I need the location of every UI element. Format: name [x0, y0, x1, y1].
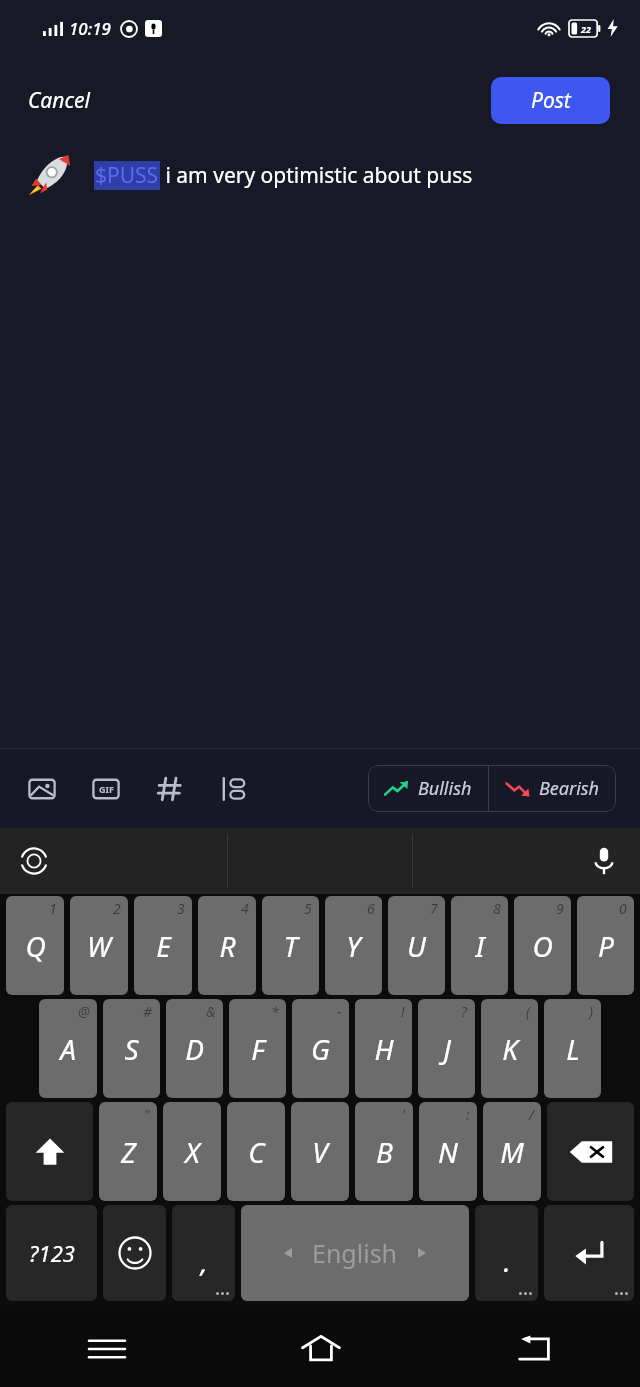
staticText: 7 — [430, 899, 438, 918]
button[interactable]: Add image — [20, 767, 64, 811]
staticText: i am very optimistic about puss — [160, 161, 473, 190]
button[interactable]: I — [451, 896, 508, 995]
button[interactable]: D — [166, 999, 223, 1098]
staticText: " — [144, 1105, 150, 1124]
staticText: 2 — [113, 899, 121, 918]
button[interactable]: W — [70, 896, 128, 995]
button[interactable]: Z — [99, 1102, 157, 1201]
staticText: 0 — [619, 899, 627, 918]
staticText: K — [502, 1030, 518, 1068]
staticText: Bearish — [539, 776, 600, 801]
button[interactable]: Recent apps — [0, 1310, 214, 1387]
staticText: # — [143, 1002, 153, 1021]
staticText: Q — [25, 927, 46, 965]
button[interactable]: Add GIF — [84, 767, 128, 811]
staticText: D — [185, 1030, 204, 1068]
staticText: . — [503, 1242, 511, 1280]
button[interactable]: P — [577, 896, 634, 995]
staticText: - — [337, 1002, 342, 1021]
staticText: , — [200, 1242, 208, 1280]
button[interactable]: Emoji — [103, 1205, 166, 1301]
button[interactable]: O — [514, 896, 571, 995]
staticText: Post — [531, 86, 571, 115]
staticText: : — [466, 1105, 470, 1124]
button[interactable]: B — [355, 1102, 413, 1201]
staticText: M — [500, 1133, 524, 1171]
button[interactable]: J — [418, 999, 475, 1098]
staticText: 9 — [556, 899, 564, 918]
staticText: * — [271, 1002, 279, 1021]
button[interactable]: English — [241, 1205, 469, 1301]
staticText: & — [206, 1002, 216, 1021]
button[interactable]: E — [134, 896, 192, 995]
button[interactable]: F — [229, 999, 286, 1098]
staticText: T — [283, 927, 298, 965]
button[interactable]: Q — [6, 896, 64, 995]
staticText: Cancel — [28, 86, 90, 115]
staticText: ? — [461, 1002, 468, 1021]
button[interactable]: X — [163, 1102, 221, 1201]
staticText: 3 — [177, 899, 185, 918]
staticText: 6 — [367, 899, 375, 918]
button[interactable]: K — [481, 999, 538, 1098]
button[interactable]: G — [292, 999, 349, 1098]
button[interactable]: . — [475, 1205, 538, 1301]
button[interactable]: , — [172, 1205, 235, 1301]
button[interactable]: Back — [427, 1310, 640, 1387]
button[interactable]: R — [198, 896, 256, 995]
staticText: Y — [346, 927, 361, 965]
button[interactable]: Enter — [544, 1205, 634, 1301]
button[interactable]: V — [291, 1102, 349, 1201]
staticText: @ — [78, 1002, 90, 1021]
staticText: ' — [402, 1105, 406, 1124]
staticText: 22 — [581, 23, 591, 35]
staticText: ) — [589, 1002, 594, 1021]
staticText: N — [438, 1133, 458, 1171]
button[interactable]: Y — [325, 896, 382, 995]
staticText: Z — [121, 1133, 136, 1171]
button[interactable]: M — [483, 1102, 541, 1201]
button[interactable]: C — [227, 1102, 285, 1201]
button[interactable]: L — [544, 999, 601, 1098]
button[interactable]: N — [419, 1102, 477, 1201]
button[interactable]: Home — [214, 1310, 427, 1387]
staticText: ?123 — [29, 1238, 75, 1268]
button[interactable]: Post — [491, 77, 610, 124]
button[interactable]: Voice input — [580, 837, 628, 885]
button[interactable]: Add hashtag — [148, 767, 192, 811]
staticText: W — [87, 927, 111, 965]
button[interactable]: Switch input — [10, 837, 58, 885]
staticText: J — [443, 1030, 451, 1068]
staticText: B — [376, 1133, 393, 1171]
button[interactable]: Backspace — [547, 1102, 634, 1201]
staticText: R — [219, 927, 236, 965]
staticText: / — [529, 1105, 534, 1124]
button[interactable]: S — [103, 999, 160, 1098]
button[interactable]: Shift — [6, 1102, 93, 1201]
staticText: F — [251, 1030, 265, 1068]
button[interactable]: Cancel — [10, 76, 108, 125]
button[interactable]: T — [262, 896, 319, 995]
button[interactable]: H — [355, 999, 412, 1098]
button[interactable]: Bullish — [368, 765, 488, 812]
staticText: H — [374, 1030, 394, 1068]
staticText: P — [598, 927, 614, 965]
staticText: 5 — [304, 899, 312, 918]
button[interactable]: Bearish — [489, 765, 616, 812]
staticText: 8 — [493, 899, 501, 918]
staticText: C — [248, 1133, 265, 1171]
staticText: A — [60, 1030, 76, 1068]
staticText: E — [156, 927, 171, 965]
button[interactable]: Create poll — [212, 767, 256, 811]
staticText: 1 — [49, 899, 57, 918]
staticText: I — [475, 927, 485, 965]
button[interactable]: ?123 — [6, 1205, 97, 1301]
staticText: X — [185, 1133, 200, 1171]
staticText: ! — [401, 1002, 405, 1021]
staticText: V — [312, 1133, 328, 1171]
staticText: $PUSS — [95, 161, 159, 190]
staticText: U — [407, 927, 426, 965]
staticText: 10:19 — [69, 17, 111, 40]
button[interactable]: U — [388, 896, 445, 995]
button[interactable]: A — [39, 999, 97, 1098]
